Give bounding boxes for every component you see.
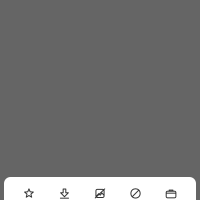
button[interactable]: Hidden Photos xyxy=(82,177,118,200)
button[interactable]: Favourites xyxy=(11,177,47,200)
button[interactable]: Downloads xyxy=(47,177,82,200)
button[interactable]: Blocked xyxy=(118,177,153,200)
button[interactable]: Work xyxy=(153,177,189,200)
